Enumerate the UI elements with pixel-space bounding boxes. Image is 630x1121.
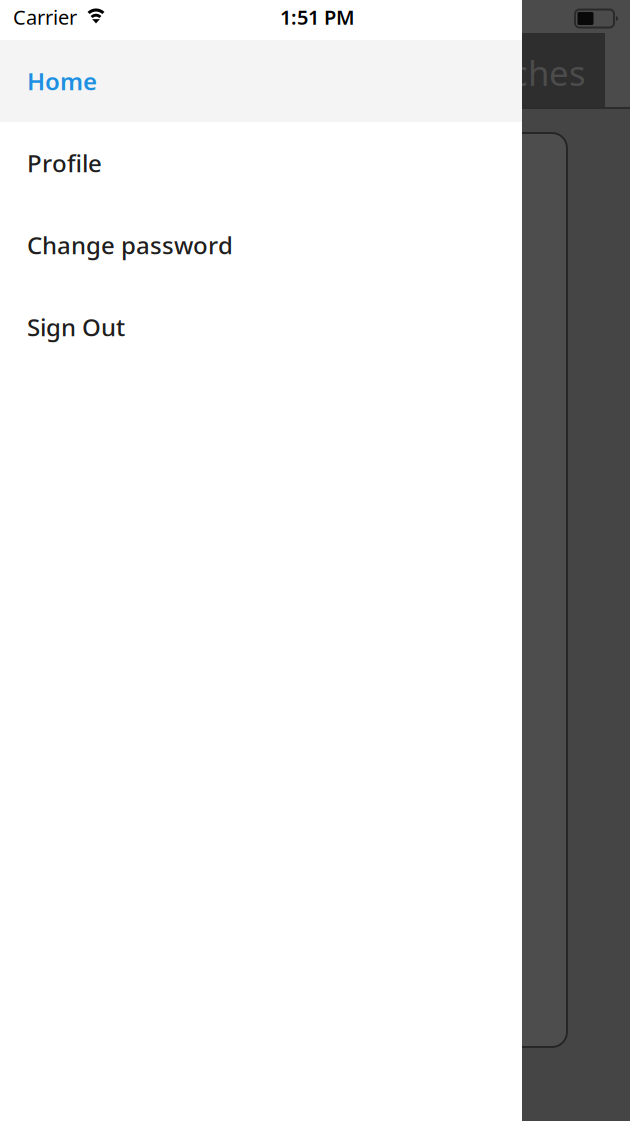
staticText: Matches xyxy=(448,49,586,95)
button[interactable]: Profile xyxy=(0,122,522,204)
button[interactable]: Close menu xyxy=(0,0,630,1121)
staticText: Home xyxy=(27,65,97,97)
staticText: Change password xyxy=(27,229,233,261)
button[interactable]: Home xyxy=(0,40,522,122)
staticText: 1:51 PM xyxy=(280,4,355,30)
button[interactable]: Change password xyxy=(0,204,522,286)
staticText: Sign Out xyxy=(27,311,125,343)
staticText: Profile xyxy=(27,147,102,179)
staticText: Carrier xyxy=(13,4,77,30)
button[interactable]: Sign Out xyxy=(0,286,522,368)
